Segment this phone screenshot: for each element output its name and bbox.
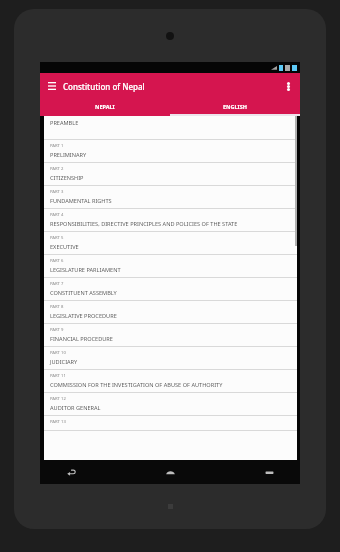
button[interactable]: PART 5 xyxy=(44,232,297,255)
staticText: Constitution of Nepal xyxy=(63,81,145,92)
button[interactable]: PART 7 xyxy=(44,278,297,301)
staticText: PART 2 xyxy=(50,166,64,172)
staticText: PART 3 xyxy=(50,189,64,195)
button[interactable]: PART 1 xyxy=(44,140,297,163)
staticText: LEGISLATURE PARLIAMENT xyxy=(50,266,121,274)
staticText: PREAMBLE xyxy=(50,119,79,127)
staticText: COMMISSION FOR THE INVESTIGATION OF ABUS… xyxy=(50,381,223,389)
staticText: LEGISLATIVE PROCEDURE xyxy=(50,312,117,320)
staticText: PART 6 xyxy=(50,258,64,264)
staticText: PART 9 xyxy=(50,327,64,333)
staticText: JUDICIARY xyxy=(50,358,78,366)
staticText: AUDITOR GENERAL xyxy=(50,404,101,412)
button[interactable]: ENGLISH xyxy=(170,99,300,114)
staticText: ENGLISH xyxy=(223,103,247,110)
staticText: CITIZENSHIP xyxy=(50,174,84,182)
button[interactable]: PART 4 xyxy=(44,209,297,232)
button[interactable]: Home xyxy=(159,461,181,483)
staticText: PART 12 xyxy=(50,396,66,402)
staticText: PRELIMINARY xyxy=(50,151,87,159)
button[interactable]: Recent apps xyxy=(258,461,280,483)
button[interactable]: PART 8 xyxy=(44,301,297,324)
button[interactable]: PART 12 xyxy=(44,393,297,416)
staticText: PART 8 xyxy=(50,304,64,310)
staticText: FUNDAMENTAL RIGHTS xyxy=(50,197,112,205)
button[interactable]: PART 11 xyxy=(44,370,297,393)
staticText: PART 13 xyxy=(50,419,66,425)
button[interactable]: NEPALI xyxy=(40,99,170,114)
staticText: EXECUTIVE xyxy=(50,243,79,251)
staticText: CONSTITUENT ASSEMBLY xyxy=(50,289,117,297)
staticText: PART 5 xyxy=(50,235,64,241)
staticText: PART 10 xyxy=(50,350,66,356)
button[interactable]: More options xyxy=(281,79,295,93)
button[interactable]: PREAMBLE xyxy=(44,116,297,140)
button[interactable]: Back xyxy=(60,461,82,483)
staticText: PART 1 xyxy=(50,143,64,149)
staticText: RESPONSIBILITIES, DIRECTIVE PRINCIPLES A… xyxy=(50,220,238,228)
button[interactable]: PART 9 xyxy=(44,324,297,347)
button[interactable]: Open navigation drawer xyxy=(45,79,59,93)
staticText: PART 7 xyxy=(50,281,64,287)
button[interactable]: PART 6 xyxy=(44,255,297,278)
staticText: PART 4 xyxy=(50,212,64,218)
staticText: PART 11 xyxy=(50,373,66,379)
staticText: NEPALI xyxy=(95,103,115,110)
button[interactable]: PART 2 xyxy=(44,163,297,186)
button[interactable]: PART 3 xyxy=(44,186,297,209)
button[interactable]: PART 13 xyxy=(44,416,297,431)
staticText: FINANCIAL PROCEDURE xyxy=(50,335,113,343)
button[interactable]: PART 10 xyxy=(44,347,297,370)
